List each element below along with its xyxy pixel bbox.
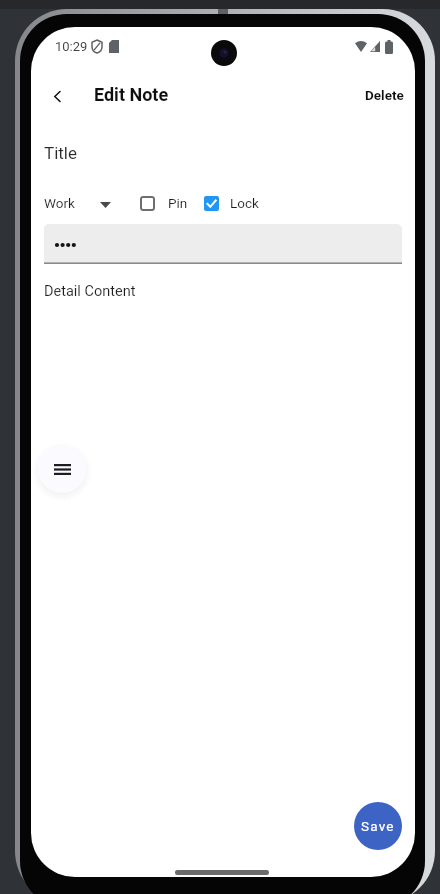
staticText: Lock [230,195,259,211]
button[interactable]: Save [354,802,402,850]
staticText: Detail Content [44,283,136,300]
staticText: Save [361,818,395,834]
button[interactable]: Delete [365,87,404,103]
button[interactable] [44,224,402,264]
button[interactable] [204,196,219,211]
staticText: Pin [168,195,188,211]
staticText: Delete [365,87,404,103]
button[interactable] [38,445,86,493]
staticText: Title [44,143,77,163]
button[interactable] [140,196,155,211]
staticText: 10:29 [55,39,88,54]
button[interactable]: Work [44,195,75,211]
staticText: Edit Note [94,84,169,105]
button[interactable] [43,82,71,110]
